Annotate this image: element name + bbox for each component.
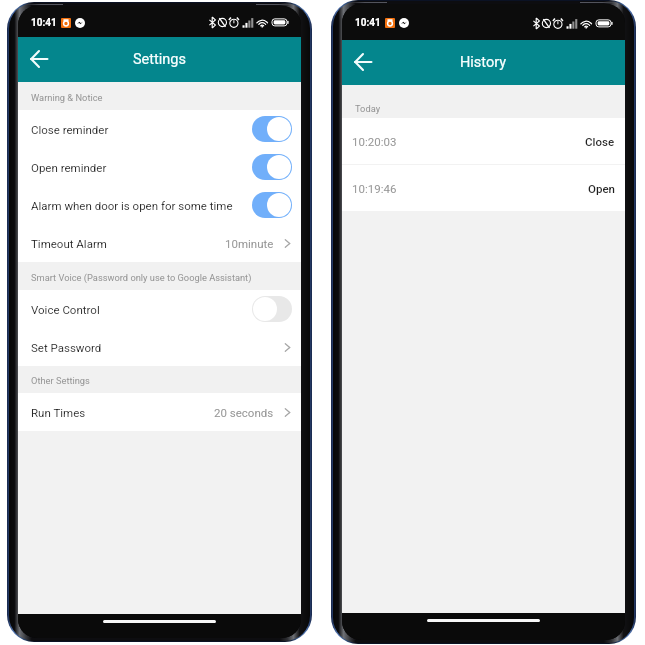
staticText: History [460, 54, 507, 71]
staticText: Other Settings [31, 375, 90, 386]
button[interactable]: 10:19:46 [342, 165, 625, 211]
staticText: Warning & Notice [31, 92, 103, 103]
staticText: Voice Control [31, 303, 100, 316]
staticText: Close [585, 135, 615, 148]
button[interactable]: Set Password [18, 328, 301, 366]
staticText: Close reminder [31, 123, 109, 136]
staticText: Timeout Alarm [31, 237, 107, 250]
button[interactable]: Back [22, 43, 56, 77]
button[interactable]: Close reminder [18, 110, 301, 148]
button[interactable]: Back [346, 46, 380, 80]
staticText: Smart Voice (Password only use to Google… [31, 272, 252, 283]
button[interactable]: Home [103, 620, 216, 623]
button[interactable]: Alarm when door is open for some time [18, 186, 301, 224]
staticText: Today [355, 103, 381, 114]
button[interactable]: Timeout Alarm [18, 224, 301, 262]
button[interactable]: 10:20:03 [342, 118, 625, 164]
staticText: Run Times [31, 406, 86, 419]
staticText: 20 seconds [214, 406, 274, 419]
button[interactable]: Run Times [18, 393, 301, 431]
staticText: Open [588, 182, 615, 195]
staticText: Open reminder [31, 161, 107, 174]
staticText: Settings [133, 51, 186, 68]
staticText: Set Password [31, 341, 102, 354]
button[interactable]: Home [427, 619, 540, 622]
staticText: 10:41 [31, 17, 57, 29]
staticText: 10:19:46 [352, 182, 397, 195]
button[interactable]: Voice Control [18, 290, 301, 328]
staticText: 10minute [225, 237, 274, 250]
staticText: 10:41 [355, 17, 381, 29]
staticText: Alarm when door is open for some time [31, 199, 233, 212]
button[interactable]: Open reminder [18, 148, 301, 186]
staticText: 10:20:03 [352, 135, 397, 148]
